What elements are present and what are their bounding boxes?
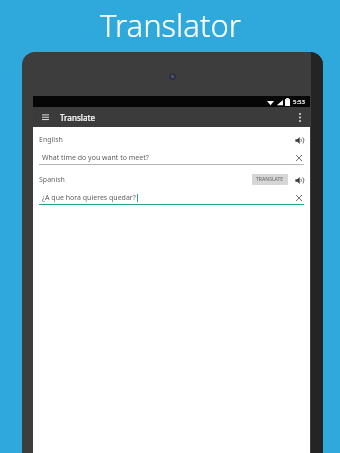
staticText: 5:53 <box>293 98 305 106</box>
button[interactable]: English <box>33 133 310 146</box>
staticText: What time do you want to meet? <box>42 153 149 163</box>
button[interactable]: Listen <box>293 174 305 186</box>
button[interactable]: Clear text <box>293 152 304 163</box>
button[interactable]: Spanish <box>33 173 310 186</box>
staticText: Spanish <box>39 175 65 185</box>
button[interactable]: ¿A que hora quieres quedar? <box>39 192 304 203</box>
button[interactable]: Open navigation menu <box>38 110 52 124</box>
button[interactable]: Clear text <box>293 192 304 203</box>
button[interactable]: TRANSLATE <box>252 174 288 185</box>
staticText: TRANSLATE <box>256 176 284 183</box>
staticText: ¿A que hora quieres quedar? <box>42 193 136 203</box>
button[interactable]: More options <box>293 110 307 124</box>
staticText: Translator <box>100 4 241 46</box>
button[interactable]: Listen <box>293 134 305 146</box>
staticText: English <box>39 135 63 145</box>
staticText: Translate <box>60 112 96 123</box>
button[interactable]: What time do you want to meet? <box>39 152 304 163</box>
